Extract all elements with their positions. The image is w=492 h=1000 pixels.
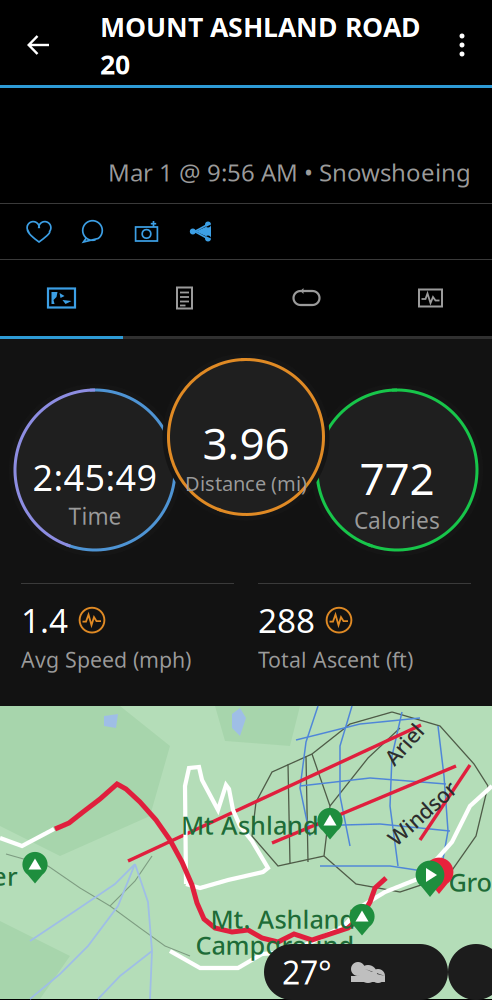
button[interactable]: More options: [438, 1, 492, 89]
button[interactable]: Back: [0, 1, 78, 89]
staticText: Mt Ashland: [181, 808, 319, 842]
staticText: Windsor: [380, 799, 464, 827]
button[interactable]: Map: [0, 260, 123, 336]
button[interactable]: Add photo: [120, 204, 174, 259]
staticText: Distance (mi): [185, 470, 307, 496]
staticText: Grou: [448, 865, 492, 899]
staticText: Total Ascent (ft): [258, 645, 413, 674]
button[interactable]: Share: [174, 204, 228, 259]
staticText: 3.96: [202, 413, 289, 472]
staticText: Mar 1 @ 9:56 AM • Snowshoeing: [108, 156, 471, 188]
button[interactable]: Laps: [246, 260, 369, 336]
button[interactable]: Charts: [369, 260, 492, 336]
staticText: Avg Speed (mph): [21, 645, 191, 674]
staticText: 288: [258, 598, 315, 642]
staticText: MOUNT ASHLAND ROAD: [100, 9, 421, 44]
staticText: 1.4: [21, 598, 68, 642]
staticText: Calories: [354, 505, 440, 535]
staticText: er: [0, 859, 18, 893]
staticText: Mt. Ashland: [210, 902, 355, 936]
staticText: 20: [100, 46, 130, 82]
staticText: Campground: [195, 928, 354, 962]
staticText: 2:45:49: [32, 453, 157, 501]
button[interactable]: Comment: [66, 204, 120, 259]
staticText: 27°: [282, 951, 332, 993]
staticText: 772: [359, 449, 434, 507]
staticText: Ariel: [380, 730, 427, 758]
staticText: Time: [68, 501, 121, 531]
button[interactable]: Like: [12, 204, 66, 259]
button[interactable]: Details: [123, 260, 246, 336]
